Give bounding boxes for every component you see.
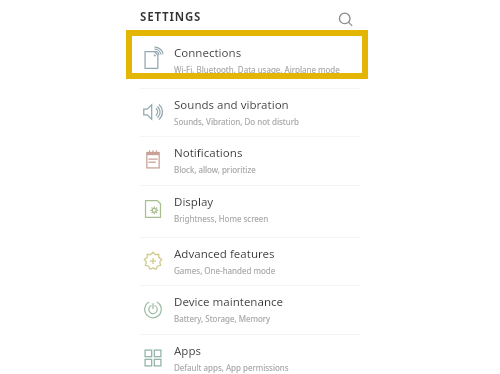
- button[interactable]: Apps: [126, 334, 368, 374]
- staticText: Battery, Storage, Memory: [174, 313, 271, 324]
- staticText: Notifications: [174, 145, 243, 161]
- staticText: Brightness, Home screen: [174, 213, 269, 224]
- button[interactable]: Sounds and vibration: [126, 88, 368, 136]
- button[interactable]: Notifications: [126, 136, 368, 184]
- staticText: SETTINGS: [140, 9, 202, 25]
- staticText: Apps: [174, 343, 202, 359]
- staticText: Advanced features: [174, 246, 275, 262]
- staticText: Default apps, App permissions: [174, 362, 289, 373]
- button[interactable]: Advanced features: [126, 237, 368, 285]
- staticText: Block, allow, prioritize: [174, 164, 256, 175]
- staticText: Sounds, Vibration, Do not disturb: [174, 116, 299, 127]
- button[interactable]: Search: [331, 5, 361, 35]
- button[interactable]: Device maintenance: [126, 285, 368, 333]
- staticText: Wi-Fi, Bluetooth, Data usage, Airplane m…: [174, 64, 340, 75]
- staticText: Connections: [174, 45, 242, 61]
- staticText: Games, One-handed mode: [174, 265, 276, 276]
- button[interactable]: Display: [126, 185, 368, 233]
- staticText: Display: [174, 194, 214, 210]
- staticText: Device maintenance: [174, 294, 284, 310]
- staticText: Sounds and vibration: [174, 97, 289, 113]
- button[interactable]: Connections: [126, 36, 368, 84]
